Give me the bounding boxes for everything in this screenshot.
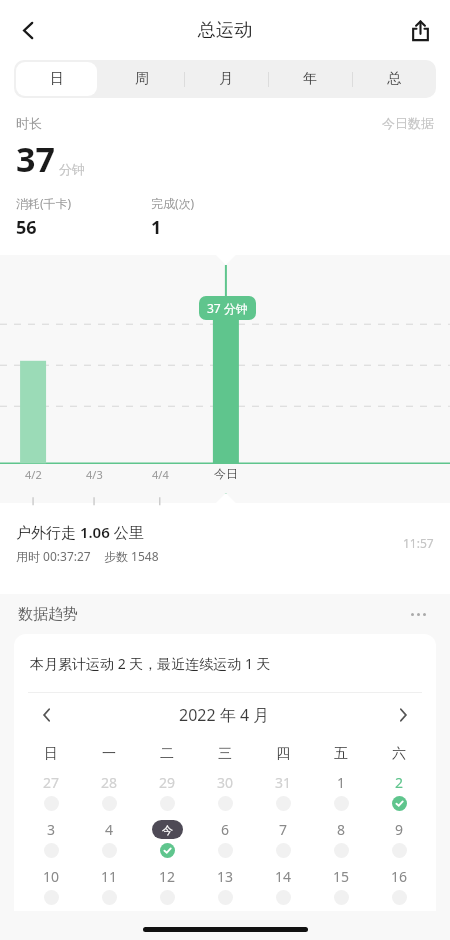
staticText: 6 [221,820,230,839]
staticText: 日 [44,745,58,763]
staticText: 总 [387,70,401,88]
staticText: 7 [279,820,288,839]
staticText: 周 [135,70,149,88]
staticText: 消耗(千卡) [16,195,72,211]
button[interactable]: 8 [312,817,370,864]
staticText: 月 [219,70,233,88]
staticText: 完成(次) [151,195,195,211]
button[interactable]: 今 [138,817,196,864]
button[interactable]: 日 [14,60,99,98]
button[interactable]: 6 [196,817,254,864]
staticText: 28 [101,773,118,792]
staticText: 56 [16,215,37,240]
staticText: 4/3 [86,467,103,482]
staticText: 29 [159,773,176,792]
staticText: 4/4 [152,467,169,482]
button[interactable]: 月 [184,60,268,98]
button[interactable]: 11 [80,864,138,911]
button[interactable]: 16 [370,864,428,911]
staticText: 1 [337,773,346,792]
button[interactable]: 15 [312,864,370,911]
staticText: 4/2 [25,467,42,482]
staticText: 16 [391,867,408,886]
button[interactable]: 28 [80,770,138,817]
staticText: 2022 年 4 月 [179,704,270,726]
button[interactable]: Share [398,8,442,52]
staticText: 总运动 [198,19,252,42]
staticText: 37 分钟 [207,300,248,316]
staticText: 3 [47,820,56,839]
button[interactable]: Back [6,8,50,52]
staticText: 今日 [214,466,238,481]
button[interactable]: 27 [22,770,80,817]
staticText: 六 [392,745,406,763]
staticText: 用时 00:37:27 [16,548,91,564]
staticText: 时长 [16,115,42,131]
staticText: 1 [151,215,162,240]
staticText: 今 [162,823,173,837]
staticText: 本月累计运动 2 天，最近连续运动 1 天 [30,654,271,673]
button[interactable]: Previous month [32,700,62,730]
staticText: 11 [101,867,118,886]
button[interactable]: 29 [138,770,196,817]
staticText: 一 [102,745,116,763]
button[interactable]: 2 [370,770,428,817]
staticText: 10 [43,867,60,886]
button[interactable]: 周 [99,60,184,98]
staticText: 8 [337,820,346,839]
staticText: 9 [395,820,404,839]
button[interactable]: 4 [80,817,138,864]
staticText: 分钟 [59,161,85,177]
staticText: 27 [43,773,60,792]
staticText: 11:57 [403,535,434,551]
staticText: 31 [275,773,292,792]
staticText: 2 [395,773,404,792]
staticText: 30 [217,773,234,792]
staticText: 14 [275,867,292,886]
button[interactable]: 总 [352,60,436,98]
button[interactable]: 1 [312,770,370,817]
staticText: 二 [160,745,174,763]
staticText: 37 [16,136,55,182]
button[interactable]: 14 [254,864,312,911]
staticText: 15 [333,867,350,886]
button[interactable]: 3 [22,817,80,864]
staticText: 今日数据 [382,115,434,131]
staticText: 户外行走 1.06 公里 [16,522,144,542]
staticText: 4 [105,820,114,839]
button[interactable]: More options [404,600,432,628]
button[interactable]: 9 [370,817,428,864]
staticText: 日 [50,70,64,88]
staticText: 年 [303,70,317,88]
button[interactable]: 31 [254,770,312,817]
staticText: 四 [276,745,290,763]
staticText: 12 [159,867,176,886]
staticText: 三 [218,745,232,763]
button[interactable]: 13 [196,864,254,911]
button[interactable]: 年 [268,60,352,98]
button[interactable]: Next month [388,700,418,730]
staticText: 13 [217,867,234,886]
staticText: 五 [334,745,348,763]
button[interactable]: 户外行走 1.06 公里 [0,503,450,583]
staticText: 数据趋势 [18,605,78,624]
button[interactable]: 12 [138,864,196,911]
button[interactable]: 30 [196,770,254,817]
button[interactable]: 10 [22,864,80,911]
button[interactable]: 7 [254,817,312,864]
staticText: 步数 1548 [104,548,159,564]
